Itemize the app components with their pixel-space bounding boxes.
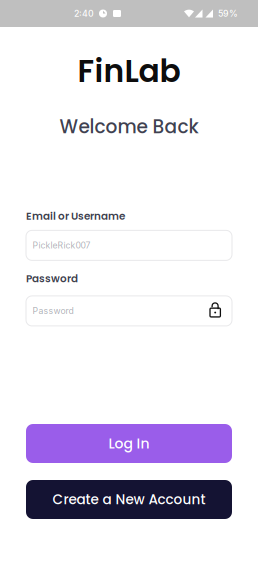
button[interactable]: Create a New Account (26, 480, 232, 519)
staticText: Password (32, 306, 73, 316)
staticText: Password (26, 271, 78, 286)
staticText: Log In (108, 434, 149, 453)
staticText: Email or Username (26, 209, 125, 223)
button[interactable]: Log In (26, 424, 232, 463)
staticText: Create a New Account (52, 490, 205, 509)
staticText: PickleRick007 (32, 240, 90, 251)
staticText: 2:40 (74, 8, 94, 19)
staticText: Welcome Back (59, 114, 198, 140)
staticText: FinLab (77, 49, 180, 93)
staticText: 59% (218, 8, 238, 19)
